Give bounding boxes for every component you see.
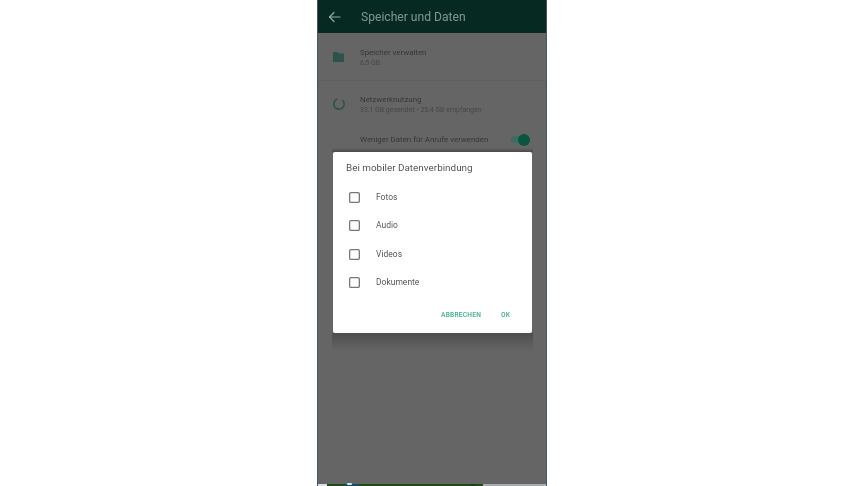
staticText: Netzwerknutzung: [360, 95, 422, 104]
button[interactable]: Videos: [333, 241, 532, 269]
button[interactable]: Speicher verwalten: [317, 33, 547, 80]
staticText: OK: [501, 311, 511, 319]
button[interactable]: OK: [495, 307, 517, 323]
staticText: Weniger Daten für Anrufe verwenden: [360, 135, 489, 144]
staticText: ABBRECHEN: [441, 311, 482, 319]
staticText: Audio: [376, 220, 398, 230]
button[interactable]: ABBRECHEN: [435, 307, 488, 323]
staticText: Videos: [376, 249, 403, 259]
button[interactable]: Netzwerknutzung: [317, 81, 547, 128]
staticText: Fotos: [376, 192, 398, 202]
button[interactable]: Audio: [333, 212, 532, 240]
staticText: 33,1 GB gesendet • 25,4 GB empfangen: [360, 106, 482, 114]
button[interactable]: Fotos: [333, 184, 532, 212]
staticText: Speicher verwalten: [360, 48, 427, 57]
staticText: 6,5 GB: [360, 59, 381, 67]
staticText: Bei mobiler Datenverbindung: [346, 162, 473, 174]
button[interactable]: Weniger Daten für Anrufe verwenden: [317, 128, 547, 168]
staticText: Dokumente: [376, 277, 420, 287]
button[interactable]: Zurück: [318, 0, 350, 33]
staticText: Speicher und Daten: [361, 10, 466, 24]
button[interactable]: Dokumente: [333, 269, 532, 297]
